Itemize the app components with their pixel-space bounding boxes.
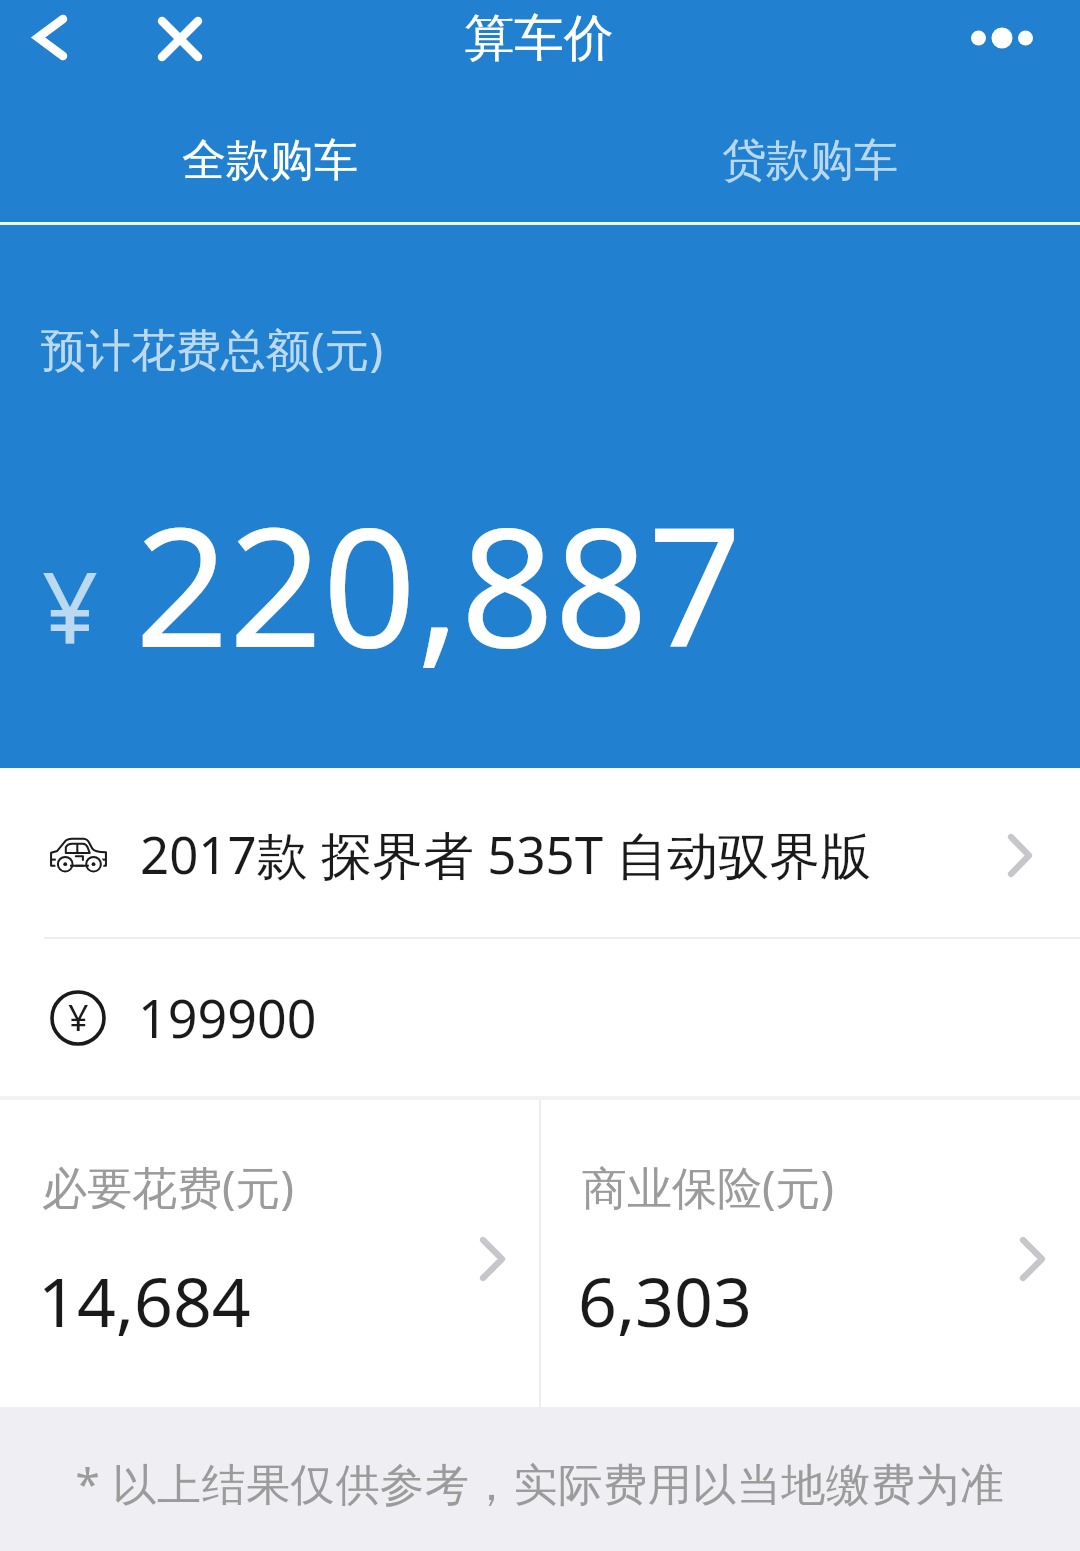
staticText: 14,684 bbox=[38, 1254, 251, 1347]
button[interactable]: 全款购车 bbox=[0, 87, 540, 234]
button[interactable]: More options bbox=[955, 0, 1055, 75]
button[interactable]: Back bbox=[8, 0, 93, 74]
button[interactable]: 2017款 探界者 535T 自动驭界版 bbox=[0, 768, 1080, 937]
staticText: ¥ bbox=[68, 993, 89, 1042]
staticText: 算车价 bbox=[464, 7, 614, 70]
button[interactable]: Close bbox=[140, 1, 220, 76]
staticText: 贷款购车 bbox=[722, 133, 898, 188]
staticText: 2017款 探界者 535T 自动驭界版 bbox=[140, 819, 872, 889]
button[interactable]: 贷款购车 bbox=[540, 87, 1080, 234]
staticText: 商业保险(元) bbox=[582, 1156, 835, 1217]
staticText: 预计花费总额(元) bbox=[41, 318, 384, 379]
staticText: 199900 bbox=[138, 982, 317, 1053]
staticText: * 以上结果仅供参考，实际费用以当地缴费为准 bbox=[0, 1453, 1080, 1513]
staticText: 全款购车 bbox=[182, 133, 358, 188]
button[interactable]: 必要花费(元) bbox=[0, 1100, 540, 1407]
staticText: 220,887 bbox=[135, 472, 742, 695]
staticText: 必要花费(元) bbox=[42, 1156, 295, 1217]
staticText: 6,303 bbox=[578, 1254, 752, 1347]
staticText: ¥ bbox=[42, 539, 99, 672]
button[interactable]: ¥ bbox=[0, 939, 1080, 1096]
button[interactable]: 商业保险(元) bbox=[540, 1100, 1080, 1407]
